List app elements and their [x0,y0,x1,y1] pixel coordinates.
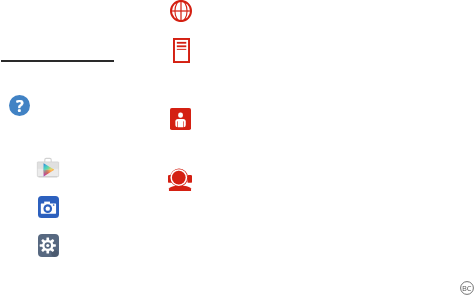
button[interactable]: Play Store [37,158,59,179]
staticText: ? [16,95,24,116]
button[interactable]: Contact [170,108,191,130]
button[interactable]: Document [173,38,190,63]
button[interactable]: BC logo [460,281,474,295]
button[interactable]: Web [170,0,192,22]
staticText: BC [462,283,472,293]
button[interactable]: Support [168,167,192,191]
button[interactable]: Help [9,95,30,116]
button[interactable]: Settings [38,234,59,257]
button[interactable]: Camera [38,196,59,218]
